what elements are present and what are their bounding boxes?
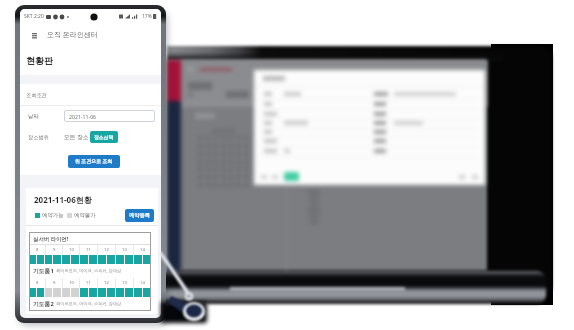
staticText: 기도룸2 <box>33 300 54 308</box>
staticText: 장소선택 <box>94 134 114 140</box>
staticText: 14 <box>140 280 145 286</box>
staticText: 2021-11-06 <box>69 113 97 120</box>
staticText: 장소범위 <box>28 134 49 141</box>
staticText: 실서버 라이언! <box>33 235 69 242</box>
staticText: 13 <box>122 247 127 253</box>
staticText: 기도룸1 <box>33 267 54 275</box>
staticText: 12 <box>104 247 109 253</box>
staticText: 오직 온라인센터 <box>47 30 98 40</box>
button[interactable]: 2021-11-06 <box>64 110 155 122</box>
button[interactable]: 장소선택 <box>90 131 118 143</box>
staticText: 화이트보드, 마이크, 스피커, 강대상 <box>56 301 122 307</box>
staticText: SKT 2:20 <box>24 13 44 20</box>
staticText: 17% <box>142 13 152 20</box>
staticText: 예약등록 <box>129 212 150 219</box>
staticText: 13 <box>122 280 127 286</box>
staticText: 14 <box>140 247 145 253</box>
staticText: 예약불가 <box>74 212 96 219</box>
staticText: 날짜 <box>28 113 39 120</box>
staticText: 10 <box>69 280 74 286</box>
staticText: 위 조건으로 조회 <box>75 158 113 165</box>
staticText: 조회조건 <box>26 92 47 99</box>
staticText: 예약가능 <box>42 212 64 219</box>
staticText: 현황판 <box>26 55 53 66</box>
staticText: 2021-11-06현황 <box>34 194 92 205</box>
staticText: 11 <box>86 247 91 253</box>
button[interactable]: 예약등록 <box>125 209 154 222</box>
staticText: 모든 장소 <box>64 133 89 141</box>
staticText: 9 <box>53 280 56 286</box>
staticText: 12 <box>104 280 109 286</box>
button[interactable]: 위 조건으로 조회 <box>68 155 120 168</box>
staticText: 8 <box>36 247 39 253</box>
staticText: 11 <box>86 280 91 286</box>
staticText: 화이트보드, 마이크, 스피커, 강대상 <box>56 268 122 274</box>
button[interactable]: Menu <box>28 29 41 42</box>
staticText: 9 <box>53 247 56 253</box>
staticText: 10 <box>69 247 74 253</box>
staticText: 8 <box>36 280 39 286</box>
